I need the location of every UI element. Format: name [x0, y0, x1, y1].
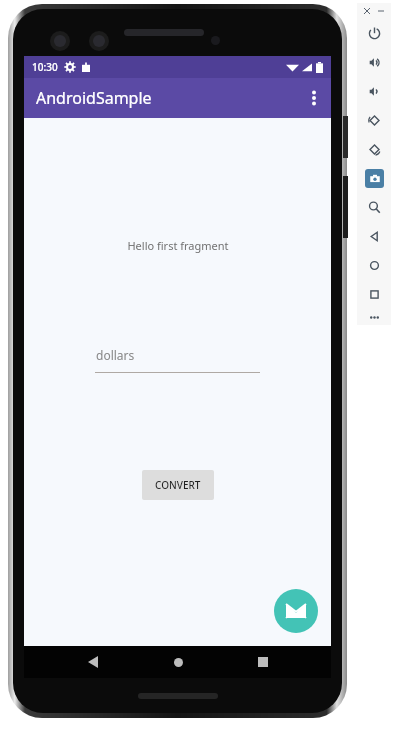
button[interactable]: Power	[357, 19, 391, 48]
button[interactable]: Volume up	[357, 48, 391, 77]
button[interactable]: Rotate right	[357, 135, 391, 164]
button[interactable]: Close	[360, 4, 374, 18]
button[interactable]: Home	[357, 251, 391, 280]
button[interactable]: Overview	[357, 280, 391, 309]
button[interactable]: Take screenshot	[357, 164, 391, 193]
button[interactable]: Back	[357, 222, 391, 251]
button[interactable]: Back	[76, 646, 110, 678]
button[interactable]: Home	[161, 646, 195, 678]
button[interactable]: More	[357, 309, 391, 325]
button[interactable]: Minimize	[374, 4, 388, 18]
staticText: 10:30	[32, 60, 58, 74]
button[interactable]: More options	[297, 78, 331, 118]
button[interactable]: dollars	[95, 347, 260, 373]
button[interactable]: Rotate left	[357, 106, 391, 135]
button[interactable]: CONVERT	[142, 470, 214, 500]
staticText: Hello first fragment	[127, 238, 229, 253]
staticText: CONVERT	[155, 478, 201, 492]
button[interactable]: Volume down	[357, 77, 391, 106]
button[interactable]: Recent apps	[246, 646, 280, 678]
button[interactable]: Send email	[274, 589, 318, 633]
staticText: AndroidSample	[36, 87, 152, 109]
button[interactable]: Zoom	[357, 193, 391, 222]
staticText: dollars	[96, 347, 135, 363]
